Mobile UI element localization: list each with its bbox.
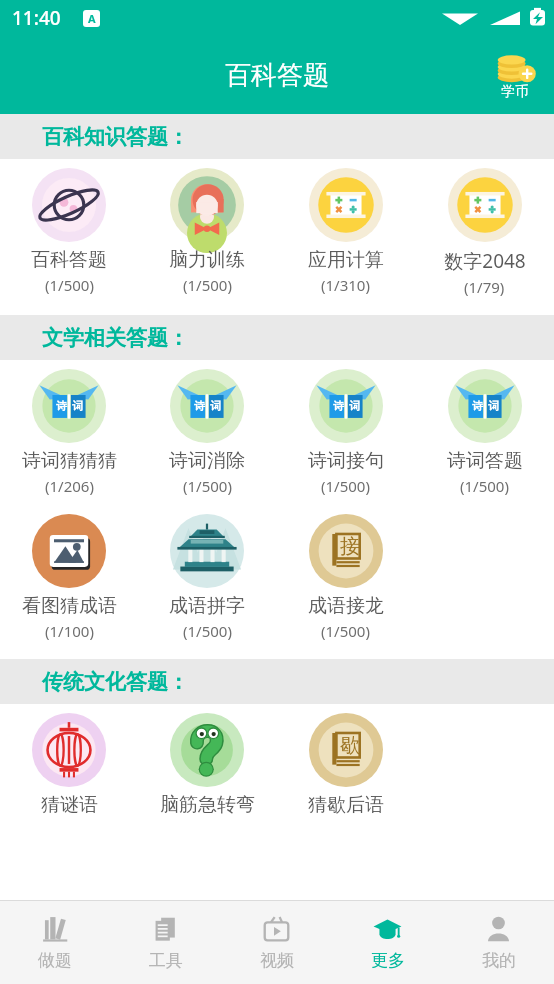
button[interactable]: 接 [276,514,415,641]
button[interactable]: 做题 [0,901,110,984]
staticText: (1/500) [183,621,232,641]
staticText: 成语接龙 [308,594,384,618]
staticText: 诗词接句 [308,449,384,473]
staticText: 歇 [340,733,360,758]
button[interactable]: 百科答题 [0,168,138,295]
staticText: 词 [72,399,83,413]
button[interactable]: 猜谜语 [0,713,138,817]
staticText: (1/500) [183,476,232,496]
button[interactable]: 成语拼字 [138,514,276,641]
staticText: 诗词答题 [447,449,523,473]
staticText: 文学相关答题： [42,325,189,351]
button[interactable]: 工具 [110,901,221,984]
staticText: (1/500) [321,476,370,496]
staticText: 成语拼字 [169,594,245,618]
staticText: 脑力训练 [169,248,245,272]
button[interactable]: 诗 [0,369,138,496]
staticText: (1/500) [460,476,509,496]
staticText: A [88,11,96,26]
staticText: 学币 [501,83,529,101]
staticText: 诗词消除 [169,449,245,473]
staticText: (1/100) [45,621,94,641]
staticText: (1/500) [183,275,232,295]
staticText: (1/500) [321,621,370,641]
button[interactable]: 更多 [332,901,443,984]
button[interactable]: 歇 [276,713,415,817]
staticText: 传统文化答题： [42,669,189,695]
staticText: 诗 [56,399,67,413]
button[interactable]: 诗 [415,369,554,496]
staticText: 诗 [333,399,344,413]
staticText: 词 [210,399,221,413]
button[interactable]: 诗 [276,369,415,496]
button[interactable]: 学币 Coins [488,48,542,103]
button[interactable]: 视频 [221,901,332,984]
staticText: (1/310) [321,275,370,295]
button[interactable]: 我的 [443,901,554,984]
staticText: 我的 [482,950,516,971]
button[interactable]: 看图猜成语 [0,514,138,641]
staticText: 更多 [371,950,405,971]
staticText: 工具 [149,950,183,971]
staticText: 数字2048 [444,248,526,274]
staticText: 脑筋急转弯 [160,793,255,817]
button[interactable]: 应用计算 [276,168,415,295]
staticText: 应用计算 [308,248,384,272]
staticText: 猜歇后语 [308,793,384,817]
staticText: (1/79) [464,277,505,297]
button[interactable]: 脑筋急转弯 [138,713,276,817]
staticText: 诗词猜猜猜 [22,449,117,473]
staticText: 百科知识答题： [42,124,189,150]
staticText: 百科答题 [225,59,329,92]
staticText: 百科答题 [31,248,107,272]
button[interactable]: 诗 [138,369,276,496]
staticText: 猜谜语 [41,793,98,817]
staticText: 诗 [472,399,483,413]
staticText: 接 [340,534,360,559]
staticText: 做题 [38,950,72,971]
staticText: (1/500) [45,275,94,295]
staticText: 词 [488,399,499,413]
staticText: (1/206) [45,476,94,496]
staticText: 诗 [194,399,205,413]
staticText: 看图猜成语 [22,594,117,618]
staticText: 视频 [260,950,294,971]
staticText: 11:40 [12,5,61,31]
button[interactable]: 数字2048 [415,168,554,297]
button[interactable]: 脑力训练 [138,168,276,295]
staticText: 词 [349,399,360,413]
